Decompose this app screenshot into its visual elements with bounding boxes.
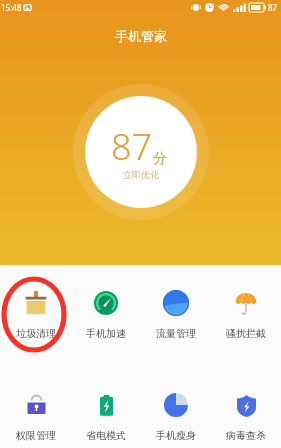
staticText: 骚扰拦截 [226,327,266,339]
staticText: 权限管理 [16,429,56,441]
staticText: 立即优化 [123,169,159,180]
staticText: 手机加速 [86,327,126,339]
staticText: 手机管家 [115,28,167,44]
button[interactable]: 流量管理 [141,281,211,339]
staticText: 流量管理 [156,327,196,339]
staticText: 87 [111,122,153,171]
staticText: 手机瘦身 [156,429,196,441]
staticText: 病毒查杀 [226,429,266,441]
button[interactable]: 省电模式 [71,383,141,441]
button[interactable]: 垃圾清理 [0,281,71,339]
staticText: 15:48 [1,2,22,13]
button[interactable]: 病毒查杀 [211,383,281,441]
button[interactable]: 权限管理 [0,383,71,441]
button[interactable]: 手机瘦身 [141,383,211,441]
staticText: 省电模式 [86,429,126,441]
staticText: 垃圾清理 [16,327,56,339]
button[interactable]: 骚扰拦截 [211,281,281,339]
staticText: 87 [268,2,278,13]
button[interactable]: 手机加速 [71,281,141,339]
staticText: 分 [153,150,167,168]
